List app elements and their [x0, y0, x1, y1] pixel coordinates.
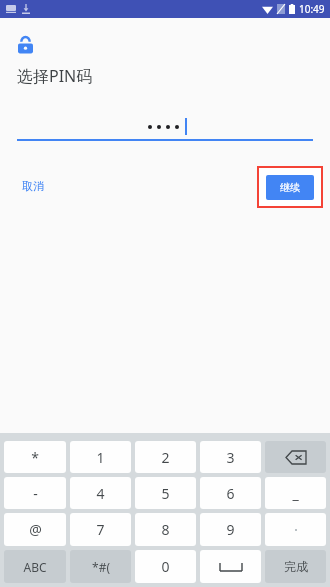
staticText: @ — [29, 520, 42, 539]
staticText: 4 — [96, 484, 105, 503]
staticText: 1 — [96, 448, 105, 467]
staticText: 8 — [161, 520, 170, 539]
button[interactable]: 4 — [70, 477, 131, 509]
staticText: 10:49 — [299, 2, 325, 16]
staticText: - — [33, 484, 38, 503]
button[interactable]: @ — [4, 513, 66, 546]
staticText: 9 — [226, 520, 235, 539]
staticText: 选择PIN码 — [17, 65, 93, 87]
button[interactable]: 8 — [135, 513, 196, 546]
button[interactable]: 1 — [70, 441, 131, 473]
button[interactable]: 6 — [200, 477, 261, 509]
button[interactable]: 9 — [200, 513, 261, 546]
button[interactable]: 继续 — [266, 175, 314, 200]
button[interactable]: *#( — [70, 550, 131, 583]
button[interactable]: _ — [265, 477, 326, 509]
button[interactable]: * — [4, 441, 66, 473]
button[interactable]: Backspace — [265, 441, 326, 473]
button[interactable]: 5 — [135, 477, 196, 509]
button[interactable]: Key — [265, 513, 326, 546]
button[interactable]: - — [4, 477, 66, 509]
button[interactable]: 取消 — [20, 177, 46, 195]
staticText: 0 — [161, 557, 170, 576]
staticText: 6 — [226, 484, 235, 503]
button[interactable]: ABC — [4, 550, 66, 583]
button[interactable]: Space — [200, 550, 261, 583]
button[interactable]: 3 — [200, 441, 261, 473]
staticText: 7 — [96, 520, 105, 539]
staticText: 2 — [161, 448, 170, 467]
staticText: *#( — [92, 559, 110, 575]
staticText: _ — [292, 484, 299, 503]
staticText: 5 — [161, 484, 170, 503]
staticText: 3 — [226, 448, 235, 467]
staticText: 继续 — [280, 181, 300, 194]
button[interactable]: 完成 — [265, 550, 326, 583]
button[interactable]: 7 — [70, 513, 131, 546]
button[interactable]: 0 — [135, 550, 196, 583]
staticText: ABC — [23, 559, 47, 575]
staticText: * — [31, 448, 39, 467]
staticText: 完成 — [284, 559, 308, 574]
button[interactable]: 2 — [135, 441, 196, 473]
